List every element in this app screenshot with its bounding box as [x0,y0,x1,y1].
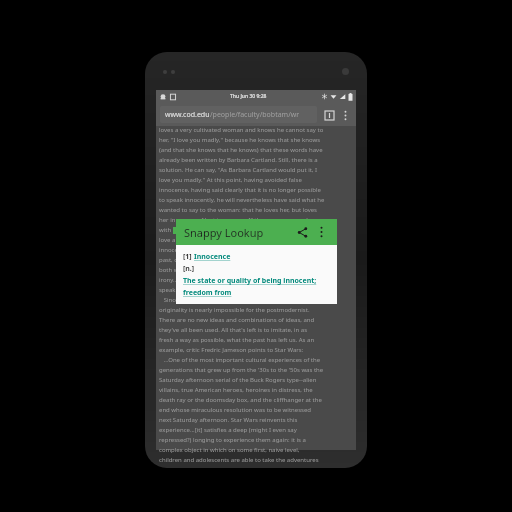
staticText: next Saturday afternoon. Star Wars reinv… [159,416,298,424]
staticText: past, of the already said, which cannot … [159,256,309,264]
staticText: example, critic Fredric Jameson points t… [159,346,304,354]
staticText: generations that grew up from the '30s t… [159,366,324,374]
button[interactable]: freedom from [183,288,232,298]
staticText: experience...[it] satisfies a deep (migh… [159,426,297,434]
staticText: end whose miraculous resolution was to b… [159,406,311,414]
button[interactable]: More options [313,224,329,240]
staticText: [1] [183,252,194,262]
staticText: Since everything has been done before an… [159,296,321,304]
staticText: originality is nearly impossible for the… [159,306,310,314]
staticText: wanted to say to the woman: that he love… [159,206,317,214]
staticText: [n.] [183,264,195,274]
staticText: /people/faculty/bobtam/wr [210,110,300,120]
button[interactable]: Tabs [322,108,336,122]
staticText: (and that she knows that he knows) that … [159,146,323,154]
staticText: love all the same. Neither of the two sp… [159,236,311,244]
button[interactable]: www.cod.edu [160,106,317,123]
staticText: irony... But both will have succeeded, o… [159,276,304,284]
staticText: fresh a way as possible, what the past h… [159,336,315,344]
staticText: Snappy Lookup [184,225,264,240]
staticText: love you madly." At this point, having a… [159,176,302,184]
staticText: complex object in which on some first, n… [159,446,300,454]
staticText: the [321,226,332,234]
staticText: ...One of the most important cultural ex… [159,356,321,364]
staticText: loves a very cultivated woman and knows … [159,126,324,134]
staticText: There are no new ideas and combinations … [159,316,315,324]
staticText: with [159,226,173,234]
staticText: www.cod.edu [165,110,210,120]
staticText: death ray or the doomsday box, and the c… [159,396,322,404]
staticText: to speak innocently, he will nevertheles… [159,196,325,204]
button[interactable]: Innocence [194,252,231,262]
staticText: her in an age of lost innocence. If the … [159,216,319,224]
staticText: already been written by Barbara Cartland… [159,156,318,164]
staticText: repressed?) longing to experience them a… [159,436,306,444]
staticText: innocent, both will have accepted the ch… [159,246,311,254]
staticText: they've all been used. All that's left i… [159,326,308,334]
button[interactable]: The state or quality of being innocent; [183,276,317,286]
staticText: villains, true American heroes, heroines… [159,386,313,394]
staticText: speaking of love. (Eco 67-68) [159,286,239,294]
staticText: both will consciously and with pleasure … [159,266,318,274]
button[interactable]: Share [293,223,311,241]
staticText: her, "I love you madly," because he know… [159,136,321,144]
button[interactable]: More options [338,108,352,122]
staticText: children and adolescents are able to tak… [159,456,319,464]
staticText: solution. He can say, "As Barbara Cartla… [159,166,318,174]
staticText: Thu Jun 30 9:28 [230,93,267,100]
staticText: Saturday afternoon serial of the Buck Ro… [159,376,317,384]
staticText: innocence, having said clearly that it i… [159,186,321,194]
